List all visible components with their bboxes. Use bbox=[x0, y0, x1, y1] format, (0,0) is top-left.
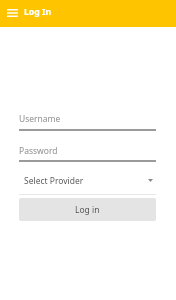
button[interactable]: Log in bbox=[19, 198, 156, 221]
staticText: Password bbox=[19, 145, 58, 157]
staticText: Log in bbox=[75, 204, 100, 216]
button[interactable]: Username bbox=[19, 109, 156, 131]
button[interactable]: Password bbox=[19, 141, 156, 162]
staticText: Username bbox=[19, 113, 61, 125]
staticText: Select Provider bbox=[24, 175, 84, 187]
button[interactable]: Open navigation drawer bbox=[2, 0, 22, 26]
staticText: Log In bbox=[24, 6, 52, 18]
button[interactable]: Select Provider bbox=[19, 170, 156, 194]
